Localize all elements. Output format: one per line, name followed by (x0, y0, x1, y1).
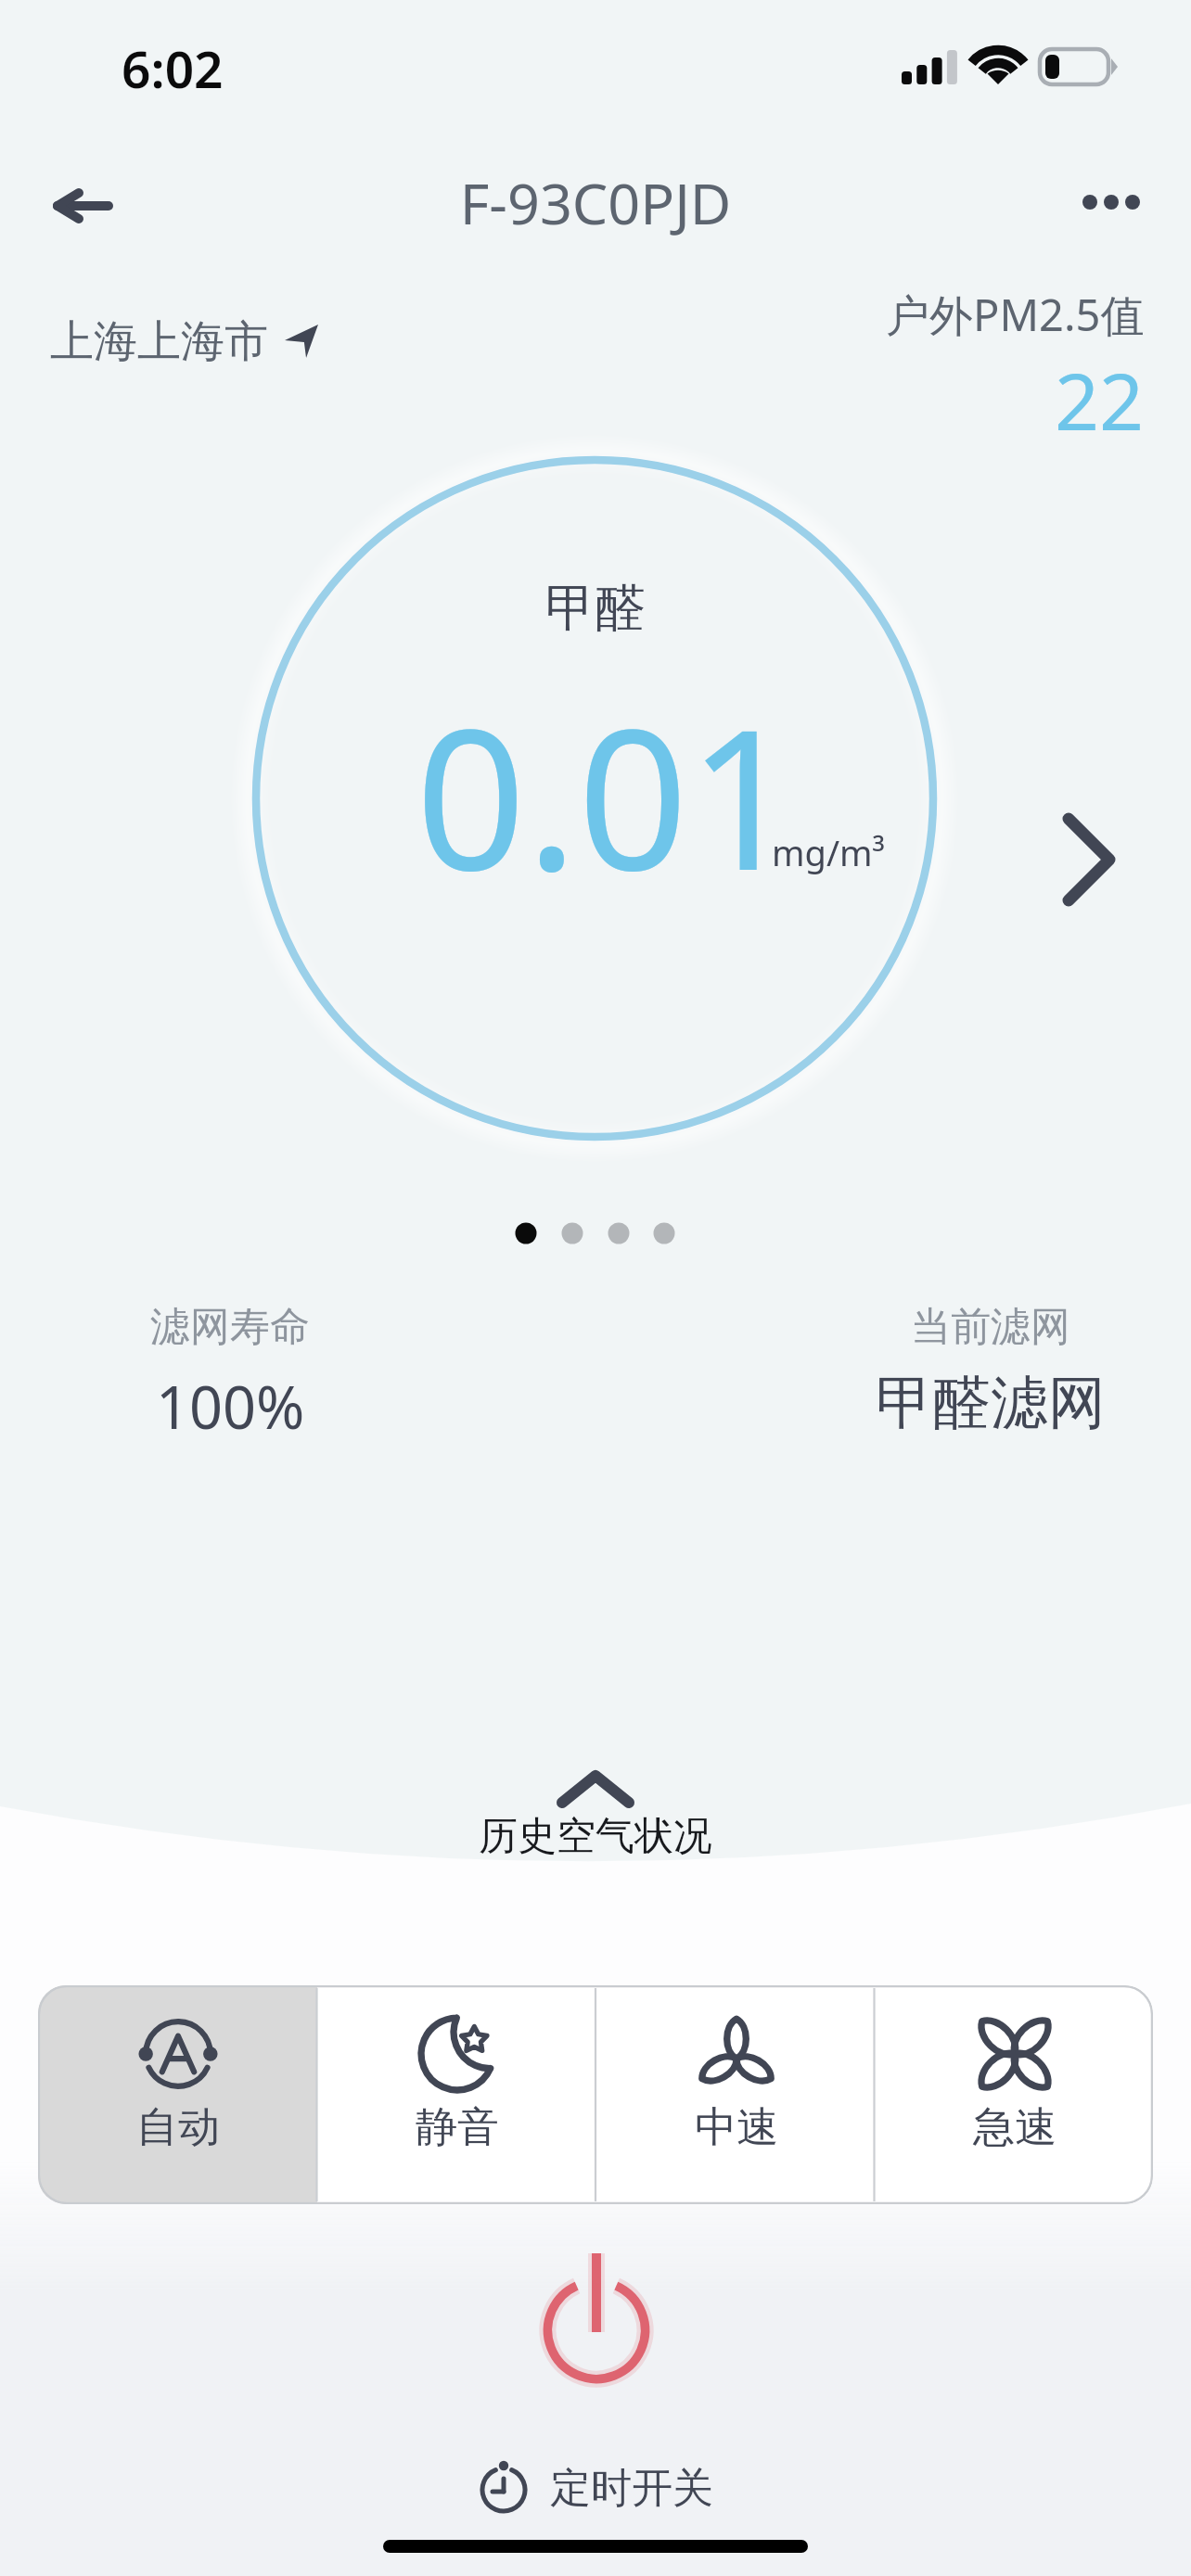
staticText: 甲醛 (0, 577, 1191, 640)
staticText: 自动 (136, 2101, 220, 2154)
staticText: 甲醛滤网 (876, 1367, 1106, 1439)
button[interactable]: 上海上海市 (45, 306, 324, 376)
button[interactable]: 静音 (317, 1985, 596, 2204)
staticText: 历史空气状况 (479, 1812, 712, 1861)
staticText: 0.01 (416, 664, 799, 926)
button[interactable]: Next (1030, 799, 1159, 929)
staticText: 100% (156, 1367, 305, 1447)
button[interactable]: 急速 (876, 1985, 1153, 2204)
staticText: mg/m³ (772, 828, 885, 876)
button[interactable]: Power (519, 2244, 677, 2402)
button[interactable]: 历史空气状况 (410, 1769, 781, 1861)
staticText: 急速 (973, 2101, 1057, 2154)
staticText: 户外PM2.5值 (886, 285, 1145, 344)
button[interactable]: Back (33, 157, 132, 255)
staticText: 滤网寿命 (150, 1302, 310, 1352)
staticText: 当前滤网 (911, 1302, 1070, 1352)
staticText: F-93C0PJD (0, 164, 1191, 241)
staticText: 定时开关 (550, 2463, 713, 2514)
staticText: 6:02 (122, 33, 224, 103)
staticText: 中速 (695, 2101, 778, 2154)
button[interactable]: 自动 (38, 1985, 317, 2204)
staticText: 静音 (416, 2101, 499, 2154)
button[interactable]: 中速 (596, 1985, 876, 2204)
button[interactable]: More options (1063, 156, 1161, 254)
staticText: 上海上海市 (50, 314, 268, 369)
staticText: 22 (1055, 347, 1145, 453)
button[interactable]: 定时开关 (410, 2455, 781, 2520)
